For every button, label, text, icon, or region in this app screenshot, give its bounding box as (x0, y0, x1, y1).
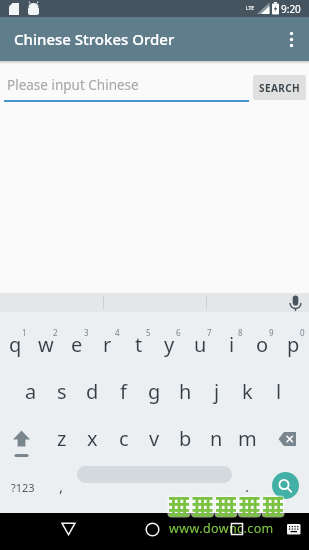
staticText: 1 (22, 327, 27, 338)
button[interactable] (272, 472, 299, 499)
button[interactable]: , (46, 456, 77, 513)
staticText: 4 (115, 327, 120, 338)
staticText: LTE (246, 5, 255, 12)
button[interactable] (77, 466, 232, 483)
button[interactable]: d (77, 360, 108, 408)
button[interactable]: u (185, 312, 216, 360)
button[interactable]: . (232, 456, 262, 513)
button[interactable]: t (123, 312, 154, 360)
staticText: SEARCH (259, 81, 301, 95)
button[interactable] (262, 408, 309, 456)
staticText: ?123 (11, 480, 35, 495)
staticText: u (194, 331, 207, 358)
staticText: 6 (176, 327, 181, 338)
button[interactable]: m (232, 408, 263, 456)
staticText: a (25, 378, 37, 405)
button[interactable]: g (139, 360, 170, 408)
button[interactable]: c (108, 408, 139, 456)
button[interactable]: k (232, 360, 263, 408)
staticText: b (179, 425, 192, 452)
button[interactable]: i (216, 312, 247, 360)
button[interactable]: n (201, 408, 232, 456)
staticText: s (57, 378, 67, 405)
button[interactable]: w (30, 312, 61, 360)
button[interactable]: y (154, 312, 185, 360)
button[interactable]: j (201, 360, 232, 408)
staticText: f (120, 378, 127, 405)
staticText: 8 (238, 327, 243, 338)
staticText: c (119, 425, 129, 452)
button[interactable]: ?123 (0, 456, 46, 513)
staticText: d (86, 378, 99, 405)
staticText: r (103, 331, 112, 358)
button[interactable] (280, 17, 309, 61)
button[interactable]: z (46, 408, 77, 456)
staticText: t (135, 331, 143, 358)
button[interactable] (48, 513, 90, 550)
button[interactable]: SEARCH (253, 75, 306, 100)
staticText: , (59, 476, 64, 496)
button[interactable]: l (263, 360, 294, 408)
staticText: www.downc.com (169, 520, 274, 534)
button[interactable] (220, 513, 262, 550)
staticText: 3 (84, 327, 89, 338)
button[interactable]: Please input Chinese (4, 68, 249, 101)
staticText: l (276, 378, 282, 405)
staticText: 7 (207, 327, 212, 338)
staticText: x (87, 425, 98, 452)
staticText: e (71, 331, 83, 358)
staticText: p (287, 331, 300, 358)
staticText: k (242, 378, 253, 405)
button[interactable]: f (108, 360, 139, 408)
staticText: j (214, 378, 220, 405)
staticText: m (238, 425, 257, 452)
button[interactable] (283, 293, 309, 312)
staticText: g (148, 378, 161, 405)
staticText: z (57, 425, 67, 452)
staticText: y (164, 331, 175, 358)
button[interactable]: e (61, 312, 92, 360)
button[interactable]: h (170, 360, 201, 408)
staticText: . (245, 476, 250, 496)
staticText: 9:20 (281, 2, 301, 16)
staticText: 2 (53, 327, 58, 338)
button[interactable]: a (15, 360, 46, 408)
button[interactable] (0, 408, 46, 456)
button[interactable]: x (77, 408, 108, 456)
staticText: Chinese Strokes Order (14, 29, 175, 49)
button[interactable]: b (170, 408, 201, 456)
button[interactable]: s (46, 360, 77, 408)
staticText: h (179, 378, 192, 405)
staticText: 5 (146, 327, 151, 338)
button[interactable]: r (92, 312, 123, 360)
staticText: q (9, 331, 22, 358)
staticText: o (256, 331, 269, 358)
staticText: n (210, 425, 223, 452)
staticText: w (38, 331, 54, 358)
staticText: Please input Chinese (7, 76, 139, 94)
button[interactable]: q (0, 312, 30, 360)
staticText: 0 (300, 327, 305, 338)
button[interactable]: p (278, 312, 309, 360)
staticText: v (149, 425, 160, 452)
button[interactable] (134, 513, 176, 550)
staticText: i (229, 331, 235, 358)
staticText: 9 (269, 327, 274, 338)
button[interactable]: v (139, 408, 170, 456)
button[interactable]: o (247, 312, 278, 360)
